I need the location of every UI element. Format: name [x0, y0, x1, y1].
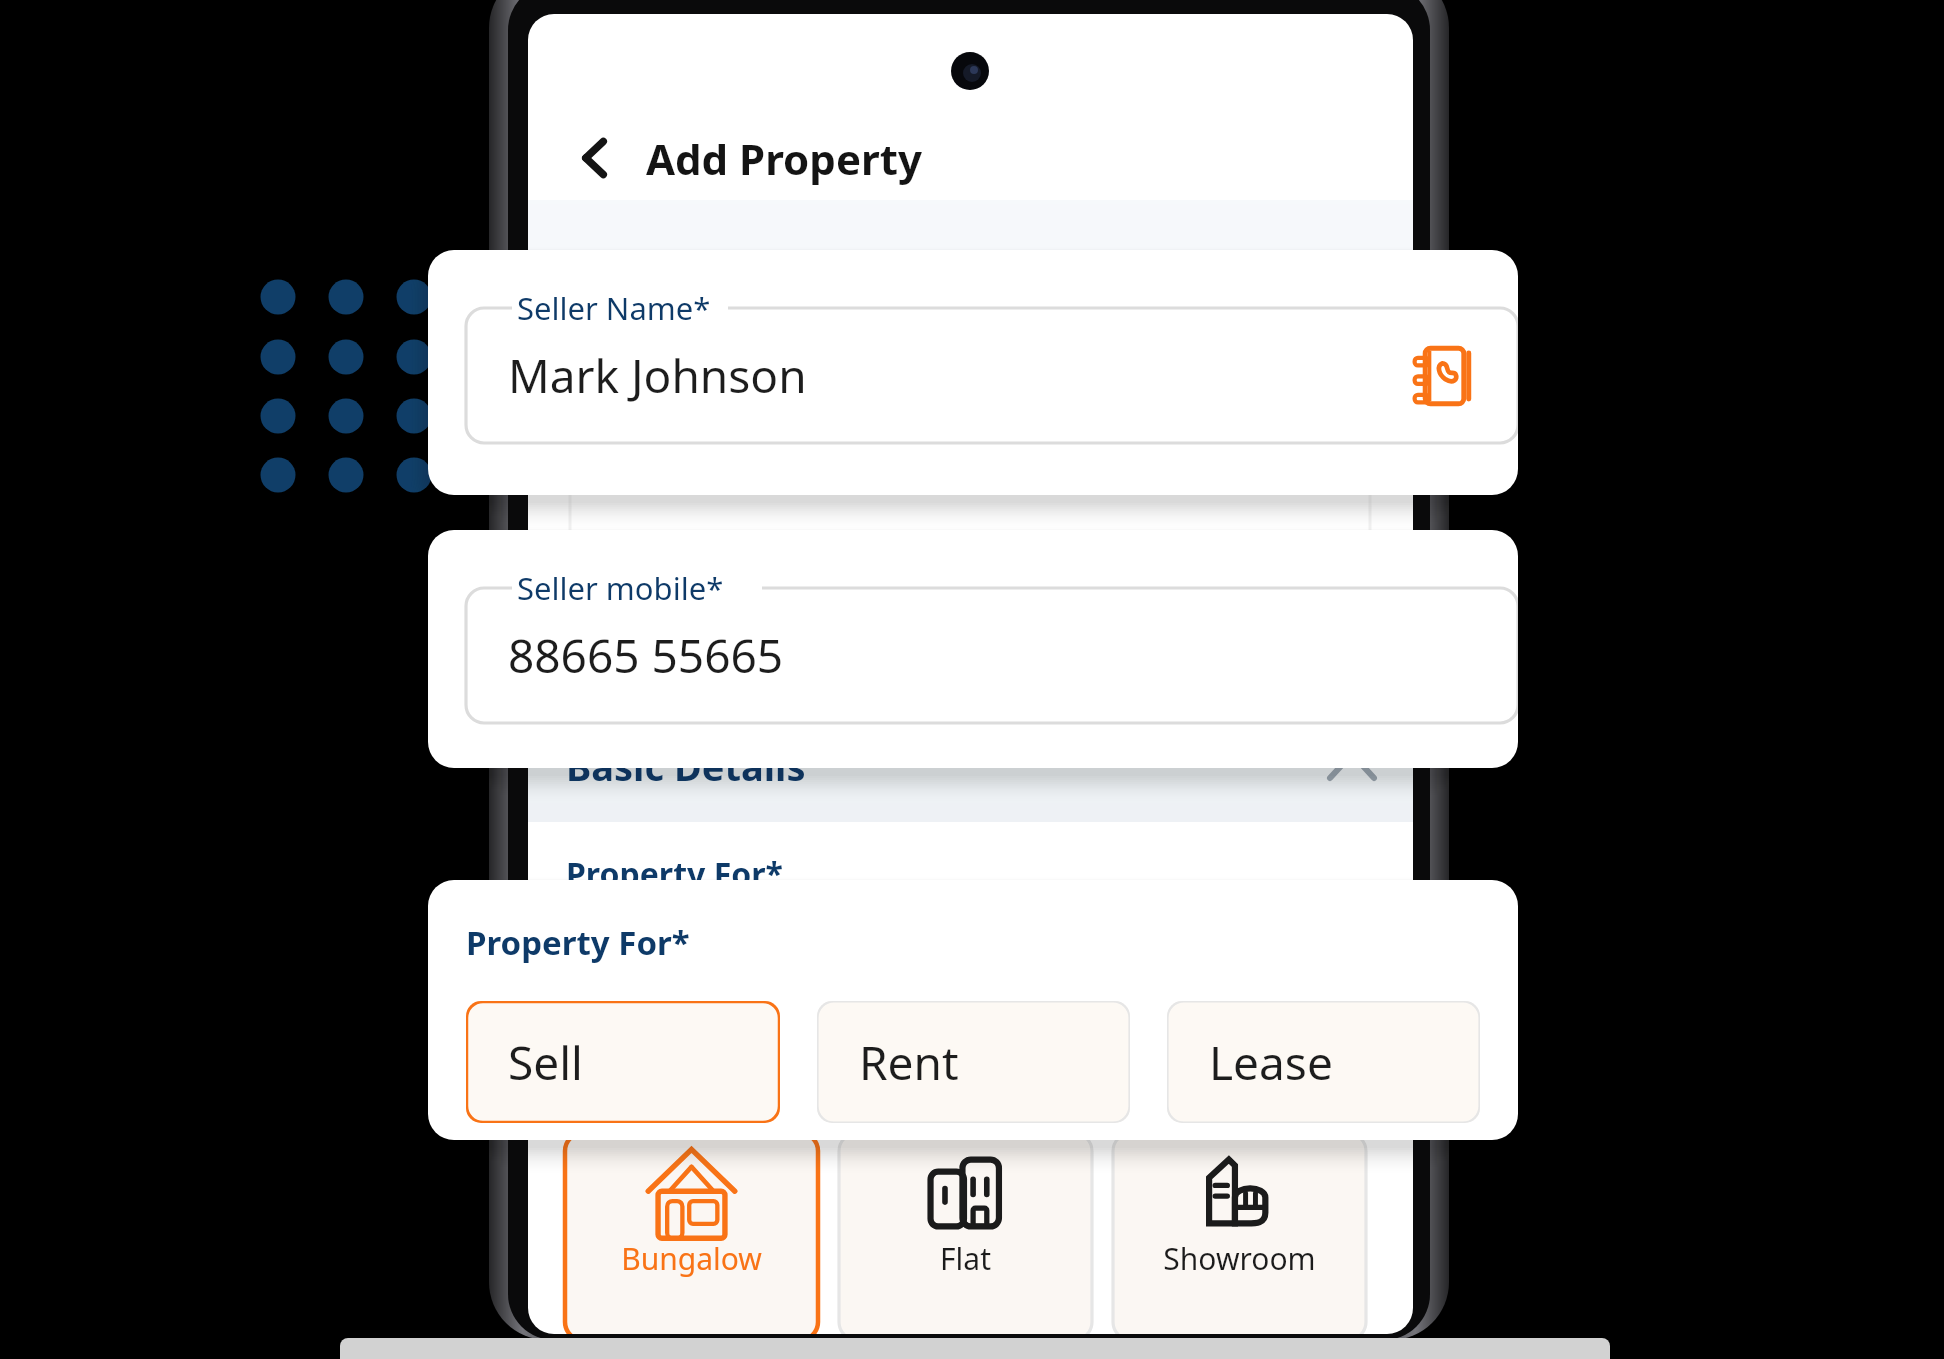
button[interactable]: Rent	[817, 1001, 1130, 1123]
staticText: Basic Details	[566, 740, 806, 792]
button[interactable]: Mark Johnson	[466, 308, 1518, 443]
staticText: Add Property	[646, 130, 922, 187]
button[interactable]: Back	[566, 129, 624, 187]
staticText: Seller Name*	[517, 287, 711, 329]
staticText: Property For*	[466, 920, 690, 965]
button[interactable]: 88665 55665	[466, 588, 1518, 723]
staticText: Sell	[508, 1031, 583, 1094]
staticText: Rent	[859, 1031, 959, 1094]
staticText: Bungalow	[621, 1238, 762, 1279]
staticText: Seller mobile*	[517, 567, 724, 609]
staticText: 88665 55665	[508, 624, 784, 687]
staticText: Property For*	[566, 852, 783, 896]
button[interactable]: Pick contact	[1404, 336, 1484, 416]
staticText: Showroom	[1163, 1238, 1316, 1279]
staticText: Flat	[940, 1238, 991, 1279]
staticText: Lease	[1209, 1031, 1333, 1094]
staticText: Mark Johnson	[508, 344, 807, 407]
button[interactable]: Sell	[466, 1001, 780, 1123]
button[interactable]: Lease	[1167, 1001, 1480, 1123]
